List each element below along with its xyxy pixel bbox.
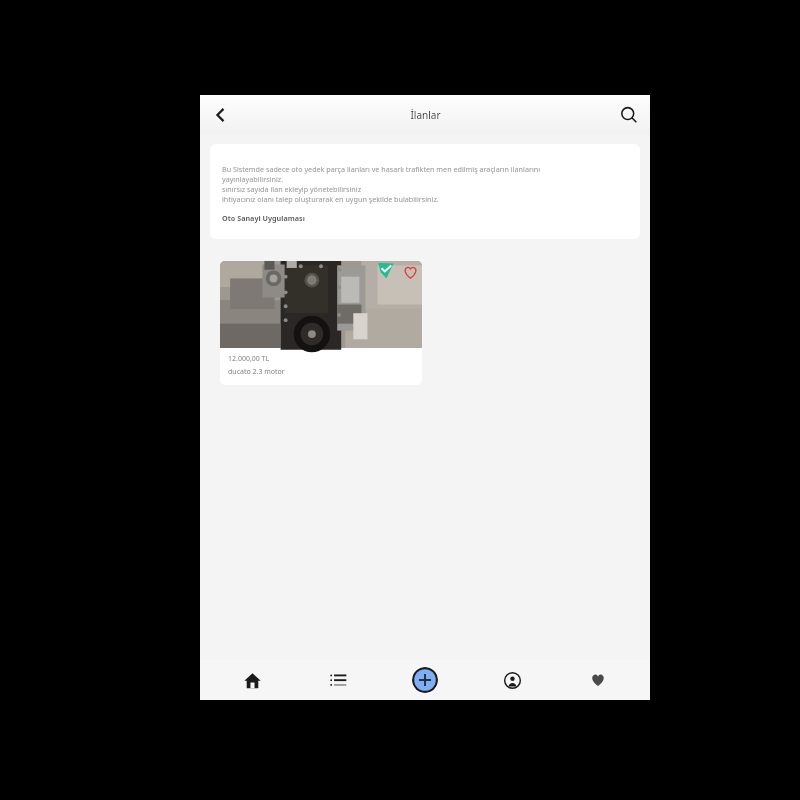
- button[interactable]: Home: [217, 660, 287, 700]
- staticText: Oto Sanayi Uygulaması: [222, 213, 305, 223]
- button[interactable]: Favorite: [400, 262, 420, 282]
- staticText: İlanlar: [410, 108, 441, 122]
- button[interactable]: Verified: [220, 261, 422, 385]
- staticText: 12.000,00 TL: [228, 354, 270, 364]
- button[interactable]: Verified: [376, 261, 396, 281]
- staticText: ducato 2.3 motor: [228, 367, 285, 377]
- button[interactable]: Add listing: [390, 660, 460, 700]
- staticText: sınırsız sayıda ilan ekleyip yönetebilir…: [222, 184, 362, 194]
- button[interactable]: Bu Sistemde sadece oto yedek parça ilanl…: [210, 144, 640, 239]
- staticText: ihtiyacınız olanı talep oluşturarak en u…: [222, 194, 439, 204]
- staticText: Bu Sistemde sadece oto yedek parça ilanl…: [222, 164, 541, 174]
- button[interactable]: List: [303, 660, 373, 700]
- staticText: yayınlayabilirsiniz.: [222, 174, 284, 184]
- button[interactable]: Profile: [477, 660, 547, 700]
- button[interactable]: Search: [612, 98, 646, 132]
- button[interactable]: Back: [204, 98, 238, 132]
- button[interactable]: Favorites: [563, 660, 633, 700]
